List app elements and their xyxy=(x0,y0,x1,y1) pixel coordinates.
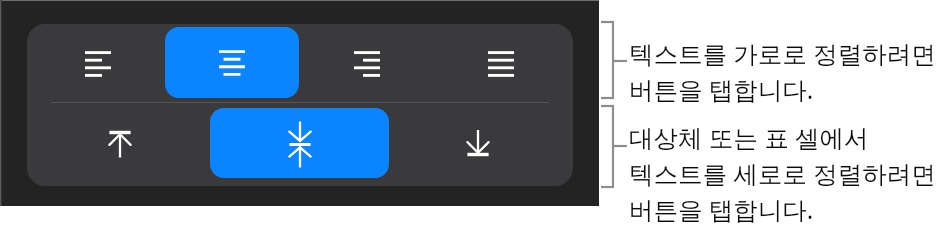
staticText: 텍스트를 가로로 정렬하려면 버튼을 탭합니다. xyxy=(629,37,936,107)
button[interactable]: Left align text xyxy=(64,33,132,95)
button[interactable]: Top align text xyxy=(86,113,154,175)
button[interactable]: Right align text xyxy=(333,33,401,95)
staticText: 대상체 또는 표 셀에서 텍스트를 세로로 정렬하려면 버튼을 탭합니다. xyxy=(629,121,936,227)
button[interactable]: Justify text xyxy=(467,33,535,95)
button[interactable]: Middle align text xyxy=(210,108,389,178)
button[interactable]: Center align text xyxy=(165,27,299,98)
button[interactable]: Bottom align text xyxy=(444,113,512,175)
